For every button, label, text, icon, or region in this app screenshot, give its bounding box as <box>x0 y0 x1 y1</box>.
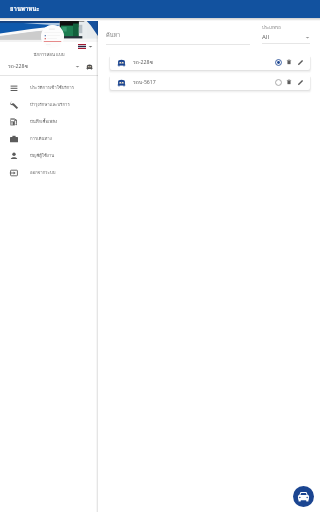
staticText: ยานพาหนะ <box>10 4 40 14</box>
staticText: ประเภทรถ <box>262 24 281 31</box>
staticText: All <box>262 33 269 41</box>
staticText: การเดินทาง <box>30 135 52 142</box>
button[interactable]: Edit <box>295 57 305 67</box>
button[interactable]: รถบ-5617 <box>110 74 310 90</box>
button[interactable]: บำรุงรักษาและบริการ <box>0 96 98 113</box>
button[interactable]: Delete <box>284 77 294 87</box>
button[interactable]: บัญชีผู้ใช้งาน <box>0 147 98 164</box>
button[interactable]: รถ-228ช <box>110 54 310 70</box>
staticText: รถบ-5617 <box>133 78 156 86</box>
staticText: บัญชีผู้ใช้งาน <box>30 152 55 159</box>
button[interactable]: ประวัติการเข้าใช้บริการ <box>0 79 98 96</box>
staticText: ค้นหา <box>106 31 121 40</box>
button[interactable]: Select <box>273 57 283 67</box>
staticText: นักการสอน แบบ <box>0 51 98 58</box>
staticText: รถ-228ช <box>8 62 29 70</box>
staticText: บันทึกเชื้อเพลิง <box>30 118 58 125</box>
button[interactable]: ค้นหา <box>106 31 250 45</box>
button[interactable]: ออกจากระบบ <box>0 164 98 181</box>
button[interactable]: ประเภทรถ <box>262 24 310 44</box>
staticText: ประวัติการเข้าใช้บริการ <box>30 84 75 91</box>
button[interactable]: Select <box>273 77 283 87</box>
button[interactable]: การเดินทาง <box>0 130 98 147</box>
button[interactable]: Edit <box>295 77 305 87</box>
button[interactable]: รถ-228ช <box>0 59 98 73</box>
staticText: ออกจากระบบ <box>30 169 56 176</box>
staticText: บำรุงรักษาและบริการ <box>30 101 70 108</box>
button[interactable]: Delete <box>284 57 294 67</box>
button[interactable]: Add vehicle <box>293 486 314 507</box>
staticText: รถ-228ช <box>133 58 154 66</box>
button[interactable]: บันทึกเชื้อเพลิง <box>0 113 98 130</box>
button[interactable]: Language <box>86 42 94 50</box>
